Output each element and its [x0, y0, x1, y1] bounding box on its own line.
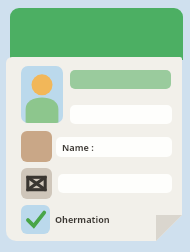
- button[interactable]: Profile photo: [21, 66, 63, 123]
- button[interactable]: Email: [21, 168, 52, 199]
- button[interactable]: [10, 8, 183, 60]
- button[interactable]: Name field icon: [21, 131, 52, 162]
- button[interactable]: Ohermation: [55, 208, 135, 230]
- button[interactable]: Confirmation checkbox: [21, 205, 50, 234]
- staticText: Ohermation: [55, 213, 110, 225]
- button[interactable]: [70, 70, 171, 89]
- button[interactable]: Name :: [56, 137, 172, 157]
- staticText: Name :: [62, 141, 94, 153]
